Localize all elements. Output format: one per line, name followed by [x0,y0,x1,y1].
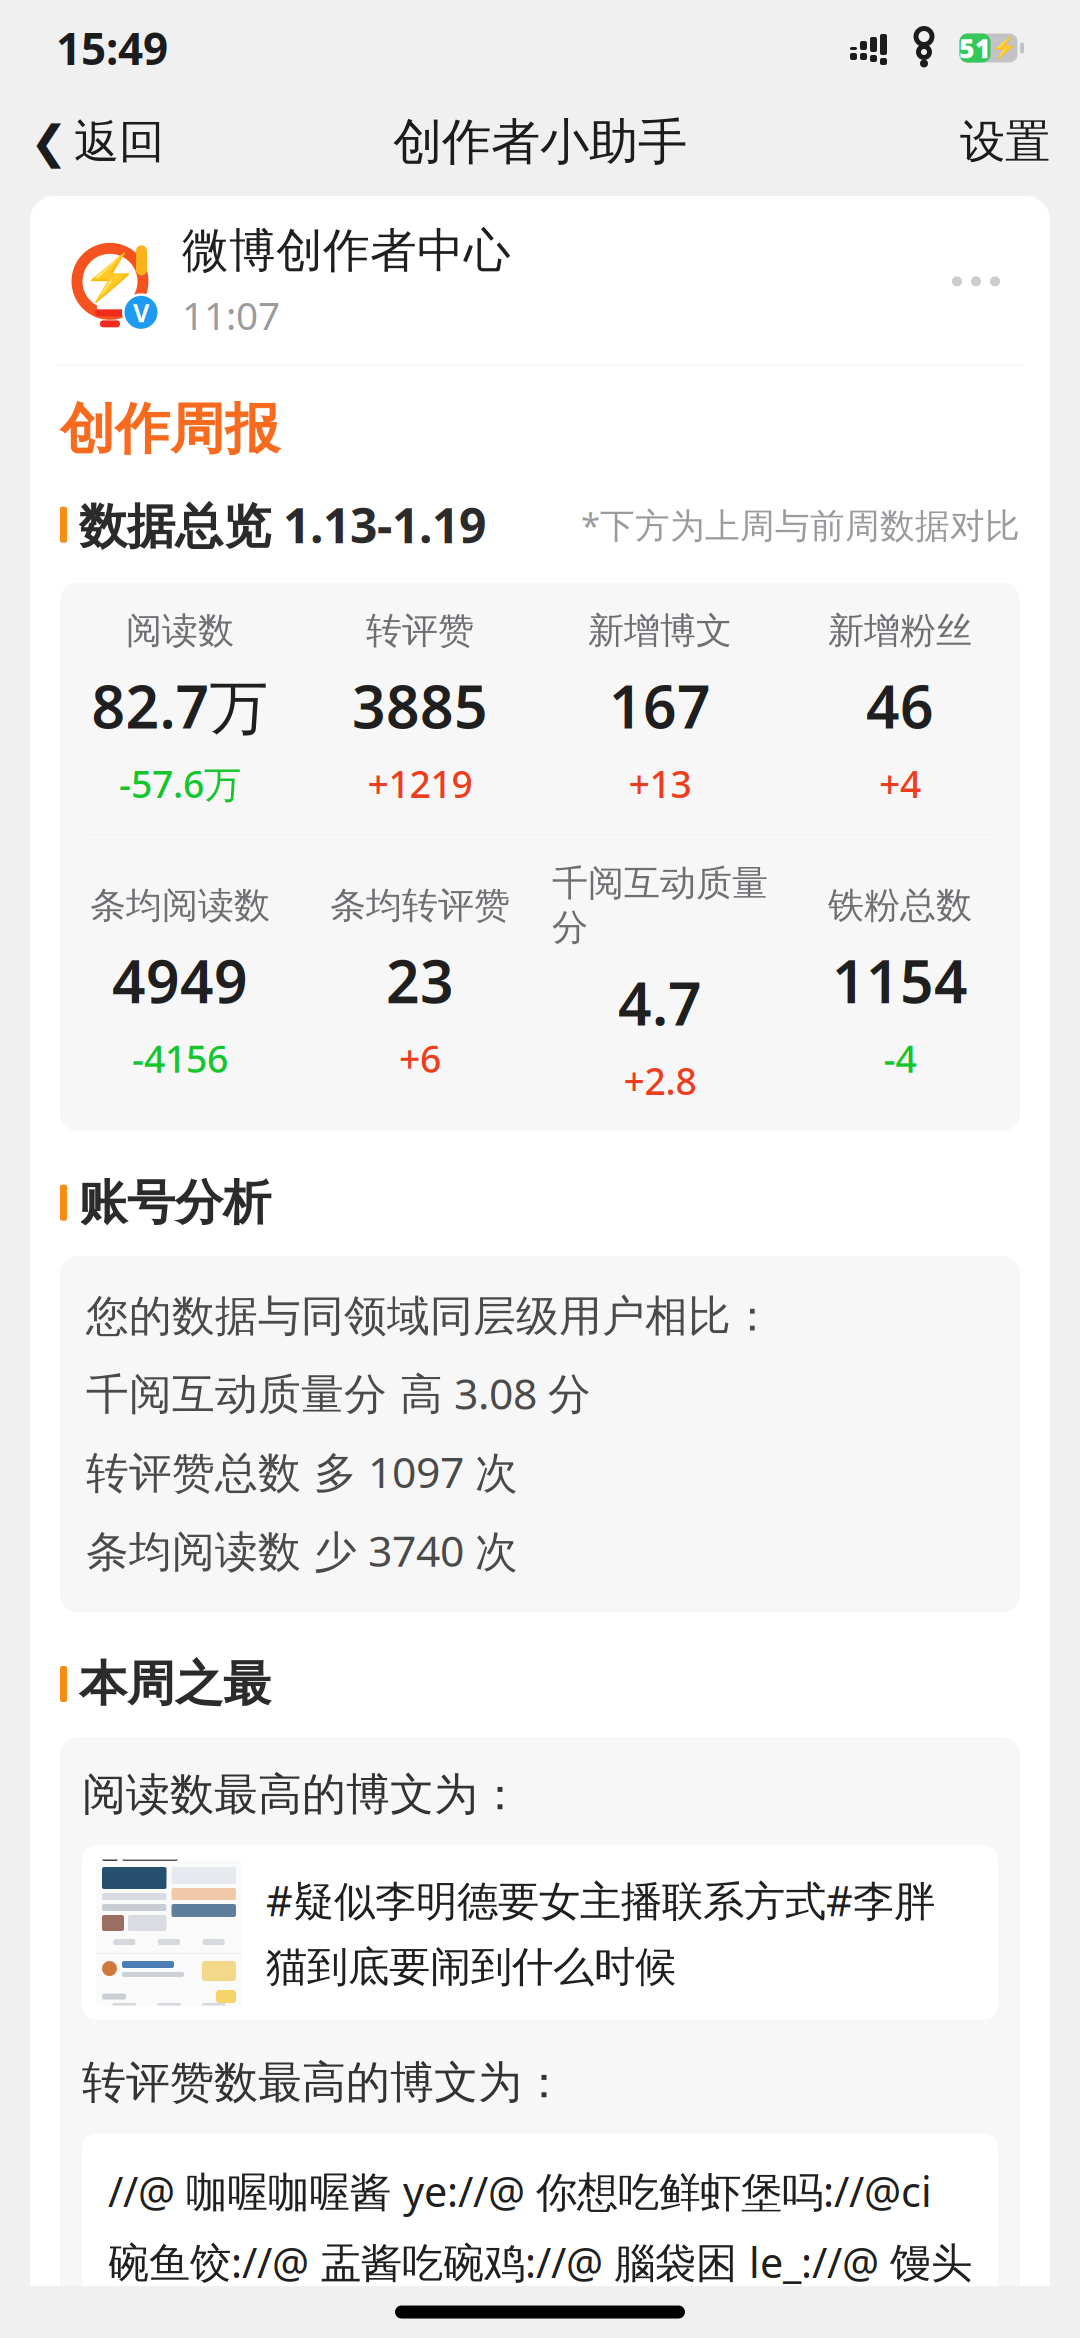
staticText: V [133,295,149,329]
staticText: -4 [883,1033,916,1083]
staticText: 转评赞数最高的博文为： [82,2055,566,2109]
staticText: 51 [959,30,991,66]
staticText: 阅读数最高的博文为： [82,1767,522,1821]
staticText: -57.6万 [119,759,241,808]
staticText: 设置 [960,114,1050,170]
staticText: 4949 [112,942,248,1019]
staticText: 条均转评赞 [330,883,510,928]
staticText: 新增博文 [588,609,732,653]
staticText: 数据总览 1.13-1.19 [79,493,486,556]
staticText: ⚡ [991,36,1018,60]
button[interactable]: ❮ [0,98,194,186]
staticText: 23 [386,942,454,1019]
button[interactable]: 设置 [930,98,1080,186]
staticText: 微博创作者中心 [182,222,511,279]
button[interactable]: //@ 咖喔咖喔酱 ye://@ 你想吃鲜虾堡吗://@ci 碗鱼饺://@ 盂… [82,2134,998,2338]
staticText: 4.7 [618,964,702,1042]
staticText: 1154 [832,942,968,1019]
staticText: 82.7万 [91,667,268,745]
staticText: //@ 咖喔咖喔酱 ye://@ 你想吃鲜虾堡吗://@ci 碗鱼饺://@ 盂… [108,2164,972,2338]
staticText: 转评赞总数 多 1097 次 [86,1443,518,1500]
staticText: 阅读数 [126,609,234,653]
staticText: ⚡ [82,251,138,303]
staticText: #疑似李明德要女主播联系方式#李胖猫到底要闹到什么时候 [266,1873,935,1992]
staticText: 铁粉总数 [828,883,972,928]
staticText: 3885 [352,667,488,745]
button[interactable]: 更多 [932,256,1020,306]
staticText: +6 [399,1033,441,1083]
staticText: 新增粉丝 [828,609,972,653]
staticText: 46 [866,667,934,745]
staticText: 15:49 [56,19,168,77]
staticText: 条均阅读数 少 3740 次 [86,1522,518,1579]
staticText: 167 [609,667,711,745]
staticText: +13 [628,759,691,808]
staticText: 创作者小助手 [393,112,687,172]
staticText: 转评赞 [366,609,474,653]
staticText: 条均阅读数 [90,883,270,928]
staticText: 本周之最 [79,1654,271,1713]
staticText: 千阅互动质量分 高 3.08 分 [86,1364,591,1421]
button[interactable]: #疑似李明德要女主播联系方式#李胖猫到底要闹到什么时候 [82,1845,998,2019]
staticText: -4156 [132,1033,228,1083]
staticText: *下方为上周与前周数据对比 [581,502,1020,548]
staticText: +2.8 [623,1056,696,1105]
staticText: 您的数据与同领域同层级用户相比： [86,1290,774,1342]
staticText: ❮ [30,116,68,168]
staticText: +4 [879,759,921,808]
staticText: 千阅互动质量分 [552,861,768,950]
staticText: 11:07 [182,289,280,341]
staticText: 账号分析 [79,1173,271,1232]
staticText: +1219 [367,759,472,808]
staticText: 创作周报 [60,396,280,463]
staticText: 返回 [74,114,164,170]
